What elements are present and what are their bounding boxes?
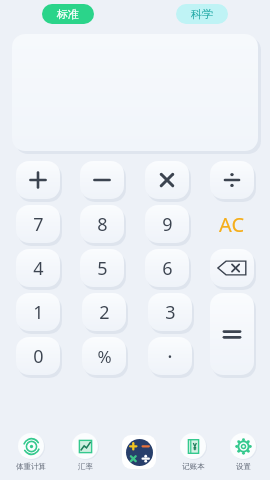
button[interactable]: AC: [210, 205, 254, 243]
button[interactable]: Plus: [16, 161, 60, 199]
staticText: AC: [219, 211, 245, 238]
staticText: 5: [97, 256, 108, 281]
button[interactable]: Backspace: [210, 249, 254, 287]
staticText: 1: [33, 300, 44, 325]
staticText: 6: [162, 256, 173, 281]
button[interactable]: Decimal point: [148, 337, 192, 375]
button[interactable]: 2: [82, 293, 126, 331]
button[interactable]: 5: [80, 249, 124, 287]
staticText: 8: [97, 212, 108, 237]
button[interactable]: Equals: [210, 293, 254, 375]
staticText: 2: [99, 300, 110, 325]
staticText: 记账本: [182, 462, 205, 471]
staticText: 汇率: [78, 462, 93, 471]
button[interactable]: 标准: [42, 4, 94, 24]
button[interactable]: Multiply: [145, 161, 189, 199]
button[interactable]: 0: [16, 337, 60, 375]
button[interactable]: 3: [148, 293, 192, 331]
staticText: 4: [33, 256, 44, 281]
button[interactable]: 6: [145, 249, 189, 287]
button[interactable]: 1: [16, 293, 60, 331]
staticText: %: [97, 345, 112, 368]
staticText: 0: [33, 344, 44, 369]
button[interactable]: Account book: [166, 433, 220, 471]
staticText: 9: [162, 212, 173, 237]
staticText: 体重计算: [16, 462, 46, 471]
button[interactable]: 7: [16, 205, 60, 243]
button[interactable]: 8: [80, 205, 124, 243]
staticText: 3: [165, 300, 176, 325]
staticText: 科学: [191, 7, 213, 21]
button[interactable]: Percent: [82, 337, 126, 375]
button[interactable]: 科学: [176, 4, 228, 24]
staticText: 设置: [236, 462, 251, 471]
button[interactable]: 4: [16, 249, 60, 287]
button[interactable]: Settings: [220, 433, 266, 471]
button[interactable]: Minus: [80, 161, 124, 199]
button[interactable]: Weight calculator: [4, 433, 58, 471]
button[interactable]: Calculator: [112, 435, 166, 469]
button[interactable]: Divide: [210, 161, 254, 199]
staticText: 标准: [57, 7, 79, 21]
staticText: ·: [167, 343, 173, 370]
button[interactable]: 9: [145, 205, 189, 243]
staticText: 7: [33, 212, 44, 237]
button[interactable]: Exchange rate: [58, 433, 112, 471]
